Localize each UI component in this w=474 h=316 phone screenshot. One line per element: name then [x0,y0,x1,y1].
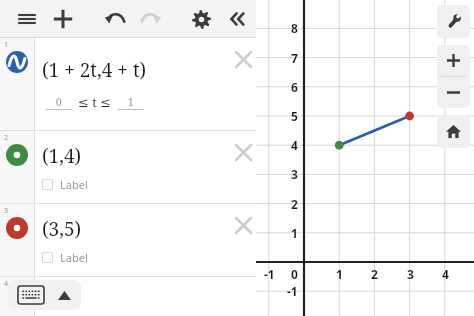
button[interactable]: Delete expression 2 [230,139,256,165]
button[interactable]: Delete expression 3 [230,212,256,238]
staticText: Label [60,177,88,192]
button[interactable]: Undo [96,0,134,38]
staticText: (1 + 2t,4 + t) [42,57,147,83]
staticText: 3 [291,166,298,182]
button[interactable]: Zoom out [437,77,470,108]
button[interactable]: Menu [8,0,46,38]
staticText: 4 [291,137,298,153]
staticText: -1 [287,283,298,299]
staticText: 5 [291,108,298,124]
staticText: (3,5) [42,216,82,242]
staticText: ≤ t ≤ [78,93,112,111]
staticText: 2 [291,196,298,212]
staticText: 1 [4,40,9,50]
staticText: -1 [264,266,275,282]
staticText: 3 [407,266,414,282]
button[interactable]: Label [42,177,88,192]
staticText: 4 [4,279,9,289]
staticText: 8 [291,20,298,36]
staticText: 2 [371,266,378,282]
staticText: 7 [291,50,298,66]
button[interactable]: 1 [0,38,256,130]
staticText: 0 [291,266,298,282]
button[interactable]: 3 [0,204,256,276]
staticText: 2 [4,133,9,143]
button[interactable]: 2 [0,131,256,203]
button[interactable]: Graph settings [437,5,470,38]
button[interactable]: Label [42,250,88,265]
staticText: 6 [291,79,298,95]
button[interactable]: Delete expression 1 [230,46,256,72]
staticText: (1,4) [42,143,82,169]
button[interactable]: Show keyboard [8,280,81,310]
button[interactable]: Add expression [44,0,82,38]
button[interactable]: Redo [132,0,170,38]
button[interactable]: Collapse panel [218,0,256,38]
button[interactable]: Default viewport [437,115,470,148]
button[interactable]: Settings [182,0,220,38]
staticText: 3 [4,206,9,216]
staticText: Label [60,250,88,265]
staticText: 0 [56,95,62,109]
staticText: 4 [442,266,449,282]
staticText: 1 [336,266,343,282]
staticText: 1 [291,225,298,241]
button[interactable]: Zoom in [437,45,470,76]
staticText: 1 [128,95,134,109]
